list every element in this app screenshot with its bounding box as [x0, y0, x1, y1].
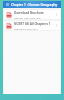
button[interactable]: Navigate up — [5, 2, 10, 7]
button[interactable]: NCERT GK All Chapters 1 — [4, 21, 60, 30]
staticText: Geology class note 2021 — [14, 16, 42, 19]
button[interactable]: Download Brochure — [4, 10, 60, 19]
button[interactable]: More options — [54, 23, 59, 28]
staticText: Science & notes 2021 — [14, 27, 38, 30]
staticText: Chapter 1 : Human Geography — [11, 3, 60, 7]
button[interactable]: More options — [54, 12, 59, 17]
staticText: NCERT GK All Chapters 1 — [14, 22, 51, 26]
staticText: Download Brochure — [14, 11, 44, 15]
